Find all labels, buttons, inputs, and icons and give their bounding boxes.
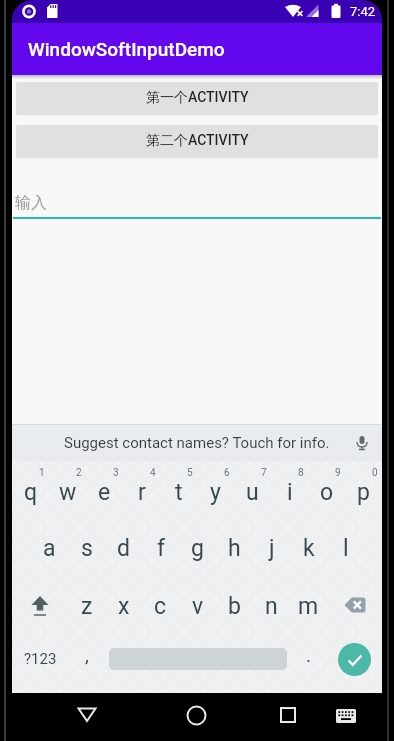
button[interactable]: h xyxy=(216,519,253,577)
staticText: 9 xyxy=(335,467,341,479)
staticText: 8 xyxy=(298,467,304,479)
staticText: m xyxy=(298,593,319,620)
staticText: e xyxy=(98,479,111,506)
staticText: o xyxy=(320,479,334,506)
staticText: b xyxy=(228,593,241,620)
button[interactable]: Suggest contact names? Touch for info. xyxy=(12,425,382,461)
button[interactable]: 2 xyxy=(49,461,86,519)
button[interactable]: 第二个ACTIVITY xyxy=(16,125,378,157)
button[interactable]: v xyxy=(179,577,216,635)
staticText: c xyxy=(154,593,167,620)
staticText: WindowSoftInputDemo xyxy=(28,38,225,60)
staticText: h xyxy=(228,535,241,562)
staticText: i xyxy=(287,479,293,506)
staticText: z xyxy=(81,593,93,620)
button[interactable]: 第一个ACTIVITY xyxy=(16,82,378,114)
staticText: 4 xyxy=(150,467,156,479)
button[interactable]: 3 xyxy=(86,461,123,519)
staticText: . xyxy=(306,644,312,666)
button[interactable]: z xyxy=(68,577,105,635)
staticText: 3 xyxy=(113,467,119,479)
button[interactable] xyxy=(184,703,208,727)
button[interactable]: ?123 xyxy=(12,630,68,688)
staticText: l xyxy=(343,535,349,562)
staticText: x xyxy=(118,593,130,620)
button[interactable] xyxy=(276,703,300,727)
button[interactable]: l xyxy=(327,519,364,577)
button[interactable]: 9 xyxy=(308,461,345,519)
button[interactable]: s xyxy=(68,519,105,577)
staticText: 5 xyxy=(187,467,193,479)
staticText: r xyxy=(138,479,146,506)
button[interactable] xyxy=(75,703,99,727)
button[interactable]: 7 xyxy=(234,461,271,519)
staticText: a xyxy=(43,535,56,562)
staticText: k xyxy=(303,535,315,562)
button[interactable] xyxy=(327,577,382,635)
staticText: Suggest contact names? Touch for info. xyxy=(64,434,330,452)
staticText: d xyxy=(117,535,130,562)
staticText: g xyxy=(191,535,204,562)
staticText: t xyxy=(175,479,183,506)
staticText: 2 xyxy=(76,467,82,479)
button[interactable]: k xyxy=(290,519,327,577)
staticText: y xyxy=(210,479,221,506)
staticText: , xyxy=(85,644,89,666)
staticText: 第一个ACTIVITY xyxy=(146,89,249,107)
staticText: j xyxy=(269,535,275,562)
button[interactable]: f xyxy=(142,519,179,577)
staticText: 1 xyxy=(39,467,45,479)
button[interactable]: c xyxy=(142,577,179,635)
staticText: ?123 xyxy=(24,650,57,668)
button[interactable]: 4 xyxy=(123,461,160,519)
button[interactable]: 1 xyxy=(12,461,49,519)
button[interactable]: . xyxy=(290,630,327,688)
staticText: 6 xyxy=(224,467,230,479)
button[interactable]: b xyxy=(216,577,253,635)
button[interactable]: m xyxy=(290,577,327,635)
button[interactable] xyxy=(334,704,358,728)
button[interactable]: d xyxy=(105,519,142,577)
staticText: 第二个ACTIVITY xyxy=(146,132,249,150)
staticText: 输入 xyxy=(15,193,47,213)
button[interactable]: 6 xyxy=(197,461,234,519)
button[interactable]: 0 xyxy=(345,461,382,519)
button[interactable]: 5 xyxy=(160,461,197,519)
button[interactable] xyxy=(105,630,290,688)
button[interactable] xyxy=(12,577,68,635)
staticText: w xyxy=(59,479,77,506)
staticText: 7 xyxy=(261,467,267,479)
staticText: v xyxy=(192,593,204,620)
staticText: n xyxy=(265,593,278,620)
button[interactable]: n xyxy=(253,577,290,635)
button[interactable]: , xyxy=(68,630,105,688)
button[interactable]: g xyxy=(179,519,216,577)
button[interactable]: j xyxy=(253,519,290,577)
button[interactable]: x xyxy=(105,577,142,635)
button[interactable]: 8 xyxy=(271,461,308,519)
staticText: f xyxy=(157,535,165,562)
staticText: 0 xyxy=(372,467,378,479)
staticText: s xyxy=(81,535,93,562)
button[interactable] xyxy=(327,630,382,688)
staticText: 7:42 xyxy=(350,4,376,19)
staticText: q xyxy=(24,479,38,506)
button[interactable]: a xyxy=(31,519,68,577)
staticText: u xyxy=(246,479,259,506)
staticText: p xyxy=(357,479,370,506)
